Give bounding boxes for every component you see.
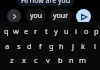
button[interactable]: s (13, 40, 24, 51)
button[interactable]: g (46, 40, 57, 51)
staticText: your (53, 11, 69, 21)
staticText: h (59, 41, 64, 51)
staticText: z (10, 55, 14, 65)
button[interactable]: d (24, 40, 35, 51)
staticText: c (34, 55, 38, 65)
staticText: v (46, 55, 50, 65)
button[interactable]: x (18, 54, 30, 65)
staticText: k (81, 41, 86, 51)
button[interactable]: o (81, 25, 91, 36)
button[interactable]: y (51, 25, 61, 36)
staticText: u (64, 26, 69, 36)
button[interactable]: m (77, 54, 89, 65)
button[interactable]: i (71, 25, 81, 36)
staticText: x (22, 55, 26, 65)
staticText: a (5, 41, 10, 51)
staticText: j (72, 41, 74, 51)
button[interactable]: b (54, 54, 66, 65)
staticText: l (94, 41, 96, 51)
staticText: t (45, 26, 48, 36)
staticText: w (13, 26, 19, 36)
button[interactable]: n (65, 54, 77, 65)
staticText: e (24, 26, 29, 36)
button[interactable]: f (35, 40, 46, 51)
staticText: b (58, 55, 63, 65)
button[interactable]: h (56, 40, 67, 51)
staticText: r (34, 26, 38, 36)
staticText: o (84, 26, 89, 36)
staticText: Hi how are you (21, 0, 71, 6)
staticText: i (75, 26, 77, 36)
button[interactable]: u (61, 25, 71, 36)
button[interactable]: l (89, 40, 100, 51)
staticText: n (69, 55, 74, 65)
staticText: y (54, 26, 58, 36)
button[interactable]: w (11, 25, 21, 36)
staticText: m (79, 55, 87, 65)
button[interactable]: e (21, 25, 31, 36)
button[interactable]: j (67, 40, 78, 51)
button[interactable]: q (1, 25, 11, 36)
button[interactable]: r (31, 25, 41, 36)
staticText: p (94, 26, 99, 36)
button[interactable]: p (91, 25, 100, 36)
button[interactable]: your (50, 9, 72, 22)
staticText: q (4, 26, 9, 36)
staticText: d (27, 41, 32, 51)
staticText: f (39, 41, 42, 51)
staticText: s (17, 41, 21, 51)
button[interactable]: v (42, 54, 54, 65)
button[interactable]: Expand suggestions (7, 9, 21, 23)
button[interactable]: a (2, 40, 13, 51)
button[interactable]: you (26, 9, 46, 22)
button[interactable]: z (6, 54, 18, 65)
button[interactable]: k (78, 40, 89, 51)
staticText: you (30, 11, 43, 21)
button[interactable]: Send (76, 9, 91, 24)
button[interactable]: t (41, 25, 51, 36)
staticText: g (49, 41, 54, 51)
button[interactable]: c (30, 54, 42, 65)
